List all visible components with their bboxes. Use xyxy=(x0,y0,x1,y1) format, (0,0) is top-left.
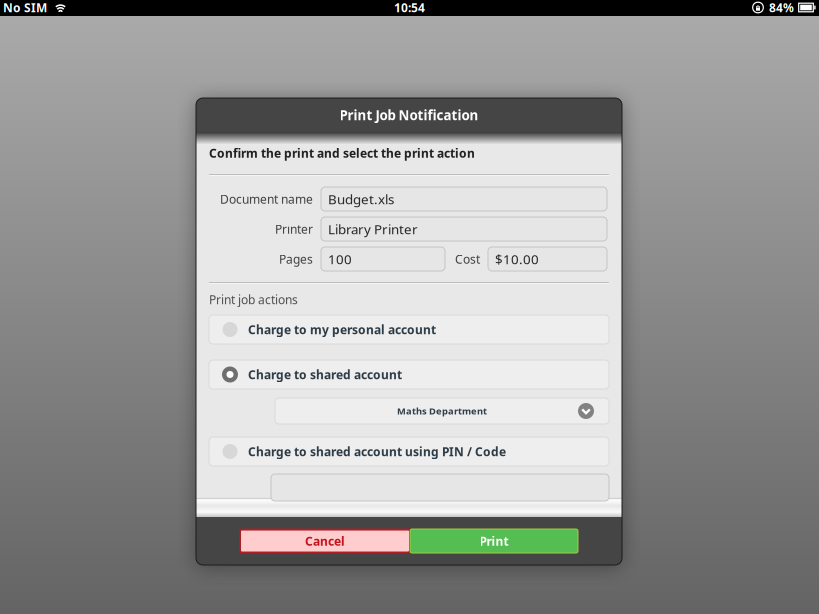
staticText: Budget.xls xyxy=(328,190,394,208)
staticText: 84% xyxy=(769,0,794,15)
staticText: Library Printer xyxy=(328,220,418,238)
staticText: No SIM xyxy=(3,0,47,15)
staticText: $10.00 xyxy=(495,250,539,268)
staticText: Maths Department xyxy=(397,405,487,417)
staticText: 10:54 xyxy=(394,0,425,15)
button[interactable]: Select shared account xyxy=(275,398,609,424)
staticText: Confirm the print and select the print a… xyxy=(209,145,475,161)
button[interactable]: Print xyxy=(410,529,578,553)
staticText: Pages xyxy=(279,251,313,267)
staticText: Cost xyxy=(455,251,480,267)
staticText: Document name xyxy=(220,191,313,207)
staticText: Charge to my personal account xyxy=(248,321,436,337)
staticText: Print xyxy=(479,533,508,549)
button[interactable]: Charge to shared account xyxy=(209,360,609,389)
button[interactable]: Charge to my personal account xyxy=(209,315,609,344)
staticText: 100 xyxy=(328,250,352,268)
staticText: Print job actions xyxy=(209,291,298,307)
staticText: Cancel xyxy=(305,533,345,549)
staticText: Charge to shared account using PIN / Cod… xyxy=(248,443,506,459)
staticText: Print Job Notification xyxy=(339,106,478,124)
button[interactable]: Charge to shared account using PIN / Cod… xyxy=(209,437,609,466)
staticText: Charge to shared account xyxy=(248,366,402,382)
button[interactable]: Cancel xyxy=(240,529,410,552)
staticText: Printer xyxy=(275,221,313,237)
